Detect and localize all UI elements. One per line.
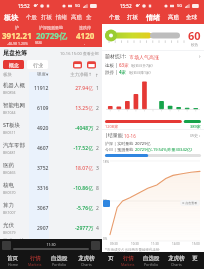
staticText: -17.52亿 xyxy=(52,145,93,152)
staticText: Markets xyxy=(28,262,42,267)
button[interactable]: ⊙ 点击查看 xyxy=(180,200,200,206)
button[interactable]: 打板 xyxy=(126,14,139,21)
button[interactable]: 日历 xyxy=(72,59,83,70)
button[interactable]: 题材统计: xyxy=(105,53,201,60)
staticText: 11912 xyxy=(34,85,49,92)
staticText: 光伏 xyxy=(3,222,14,229)
staticText: BK0579 xyxy=(3,230,16,235)
staticText: 2907 xyxy=(37,225,49,232)
staticText: 概念 xyxy=(9,62,19,68)
staticText: 核电 xyxy=(3,182,14,189)
button[interactable]: 行业 xyxy=(27,60,48,69)
button[interactable]: 医药 xyxy=(0,158,102,178)
button[interactable]: 个股 xyxy=(108,14,121,21)
button[interactable]: 龙虎榜 xyxy=(76,254,97,268)
button[interactable]: 情绪 xyxy=(54,14,69,21)
button[interactable]: 全 xyxy=(84,14,94,21)
button[interactable]: 图表设置 xyxy=(103,200,110,207)
staticText: 11:30 xyxy=(13,242,89,247)
button[interactable]: 概念 xyxy=(3,60,24,69)
staticText: BK0481 xyxy=(3,150,16,155)
button[interactable]: 个股 xyxy=(24,14,39,21)
button[interactable]: 数字经济 xyxy=(0,238,102,239)
staticText: ↑ xyxy=(95,73,99,78)
staticText: 汽车零部件 xyxy=(3,142,29,149)
staticText: 智能电网 xyxy=(3,102,25,109)
staticText: 20729亿(-19.54%,昨量30342亿) xyxy=(135,147,193,152)
button[interactable]: 页 xyxy=(106,254,116,268)
staticText: 连板 | xyxy=(105,62,118,68)
button[interactable]: ST板块 xyxy=(0,118,102,138)
staticText: 15:52 xyxy=(120,3,132,9)
staticText: 行情 xyxy=(30,255,41,262)
button[interactable]: 情绪 xyxy=(145,13,161,22)
staticText: Home xyxy=(8,262,18,267)
button[interactable]: 打板 xyxy=(39,14,54,21)
button[interactable]: 高赔 xyxy=(69,14,84,21)
staticText: 13.25亿 xyxy=(52,105,93,112)
staticText: 全 xyxy=(86,14,92,21)
staticText: 较热 xyxy=(191,43,198,47)
staticText: 强度▾ xyxy=(37,72,49,78)
staticText: -4048万 xyxy=(52,125,93,132)
staticText: 11:30 xyxy=(151,242,159,246)
button[interactable]: 提醒 xyxy=(86,59,97,70)
button[interactable]: 智能电网 xyxy=(0,98,102,118)
button[interactable]: 自选股 xyxy=(141,254,162,268)
staticText: 打板 xyxy=(41,14,52,21)
staticText: 15:52 xyxy=(18,3,30,9)
staticText: 2 xyxy=(96,205,99,212)
staticText: - xyxy=(84,41,86,46)
staticText: 4 xyxy=(96,225,99,232)
button[interactable]: 高赔 xyxy=(167,14,180,21)
staticText: 2 xyxy=(96,105,99,112)
staticText: 20729亿 xyxy=(36,30,67,41)
button[interactable]: 更 xyxy=(190,254,200,268)
button[interactable]: 首页 xyxy=(5,254,20,268)
button[interactable]: |结量能 xyxy=(105,132,201,139)
button[interactable]: 行情 xyxy=(26,254,44,268)
staticText: 2 xyxy=(96,125,99,132)
staticText: 09:30 xyxy=(110,242,118,246)
staticText: 沪深预测量能 xyxy=(39,25,63,30)
staticText: 60 xyxy=(188,28,201,43)
staticText: (较前日降1家) xyxy=(129,70,151,75)
staticText: 9% xyxy=(103,199,108,203)
staticText: 5G xyxy=(75,3,81,8)
button[interactable]: 自选股 xyxy=(49,254,70,268)
staticText: Portfolio xyxy=(144,262,159,267)
staticText: (较前日升7家) xyxy=(131,63,153,68)
button[interactable]: 光伏 xyxy=(0,218,102,238)
button[interactable]: 核电 xyxy=(0,178,102,198)
button[interactable]: 行情 xyxy=(119,254,137,268)
staticText: 27.94亿 xyxy=(52,85,93,92)
staticText: 3316 xyxy=(37,185,49,192)
staticText: 高赔 xyxy=(168,14,179,21)
staticText: 高赔 xyxy=(71,14,82,21)
staticText: 今日 | 预测量能 xyxy=(105,147,134,152)
button[interactable]: 板块 xyxy=(3,13,19,22)
staticText: Charts xyxy=(81,262,92,267)
staticText: 10-16 15:00 查看全部 xyxy=(60,51,99,56)
staticText: 3912.21 xyxy=(2,30,32,41)
staticText: -46.98 1.20% xyxy=(7,41,28,46)
staticText: BK0465 xyxy=(3,170,16,175)
button[interactable]: 机器人概念 xyxy=(0,78,102,98)
staticText: 个股 xyxy=(109,14,120,21)
button[interactable]: 算力 xyxy=(0,198,102,218)
staticText: 4120 xyxy=(76,30,95,41)
staticText: 6109 xyxy=(37,105,49,112)
button[interactable]: 汽车零部件 xyxy=(0,138,102,158)
staticText: 行情 xyxy=(123,255,134,262)
staticText: BK0894 xyxy=(3,90,16,95)
button[interactable]: 全球 xyxy=(185,14,198,21)
staticText: 机器人概念 xyxy=(3,82,29,89)
button[interactable]: 龙虎榜 xyxy=(166,254,187,268)
staticText: 4920 xyxy=(37,125,49,132)
staticText: *市场成交占当日两市量能变化走势 xyxy=(105,247,160,252)
staticText: 4家 xyxy=(119,69,127,75)
